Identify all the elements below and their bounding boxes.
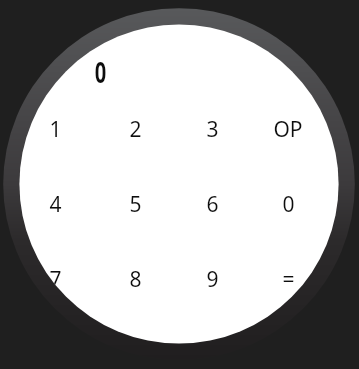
button[interactable]: 6 [177,171,247,237]
staticText: OP [273,115,303,144]
staticText: 0 [282,190,295,219]
staticText: 1 [49,115,62,144]
button[interactable]: 1 [20,96,90,162]
staticText: 3 [206,115,219,144]
button[interactable]: 9 [177,246,247,312]
staticText: = [282,265,295,294]
staticText: 9 [206,265,219,294]
staticText: 8 [129,265,142,294]
staticText: 0 [94,53,107,91]
staticText: 5 [129,190,142,219]
staticText: 7 [49,265,62,294]
staticText: 4 [49,190,62,219]
staticText: 6 [206,190,219,219]
button[interactable]: 7 [20,246,90,312]
button[interactable]: 5 [100,171,170,237]
button[interactable]: = [253,246,323,312]
button[interactable]: 4 [20,171,90,237]
staticText: 2 [129,115,142,144]
button[interactable]: 2 [100,96,170,162]
button[interactable]: 3 [177,96,247,162]
other: Result display, 0 [52,50,148,94]
button[interactable]: 0 [253,171,323,237]
button[interactable]: 8 [100,246,170,312]
button[interactable]: OP [253,96,323,162]
